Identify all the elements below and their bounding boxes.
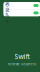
staticText: Option	[5, 0, 9, 16]
staticText: Swift	[14, 52, 29, 61]
staticText: Recreate iOS screens	[8, 62, 36, 66]
staticText: Option	[5, 2, 9, 23]
